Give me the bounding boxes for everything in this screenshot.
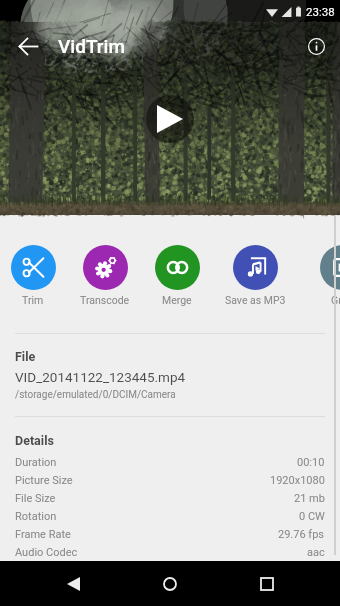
staticText: Merge [162, 294, 192, 306]
button[interactable]: Back [49, 561, 97, 606]
button[interactable]: Trim [0, 245, 68, 306]
staticText: Picture Size [15, 474, 73, 487]
button[interactable]: Home [146, 561, 194, 606]
button[interactable]: Info [292, 22, 340, 70]
staticText: 0 CW [299, 510, 325, 523]
button[interactable]: Back [4, 22, 52, 70]
button[interactable]: Play [146, 95, 194, 143]
button[interactable]: Merge [142, 245, 212, 306]
staticText: VID_20141122_123445.mp4 [15, 369, 186, 385]
staticText: 29.76 fps [278, 528, 325, 541]
button[interactable]: Transcode [70, 245, 140, 306]
staticText: Grab [331, 294, 340, 306]
staticText: Trim [22, 294, 44, 306]
staticText: 23:38 [306, 5, 335, 18]
staticText: File [15, 349, 36, 364]
staticText: File Size [15, 492, 56, 505]
staticText: Duration [15, 456, 57, 469]
staticText: aac [307, 546, 325, 559]
staticText: Frame Rate [15, 528, 71, 541]
staticText: 21 mb [294, 492, 325, 505]
staticText: Save as MP3 [225, 294, 286, 306]
staticText: Audio Codec [15, 546, 78, 559]
button[interactable]: Grab [307, 245, 340, 306]
staticText: 1920x1080 [270, 474, 325, 487]
staticText: VidTrim [58, 35, 125, 57]
staticText: Rotation [15, 510, 57, 523]
staticText: Details [15, 433, 54, 448]
staticText: /storage/emulated/0/DCIM/Camera [15, 389, 176, 401]
button[interactable]: Save as MP3 [220, 245, 290, 306]
staticText: 00:10 [297, 456, 325, 469]
staticText: Transcode [80, 294, 130, 306]
button[interactable]: Recents [243, 561, 291, 606]
